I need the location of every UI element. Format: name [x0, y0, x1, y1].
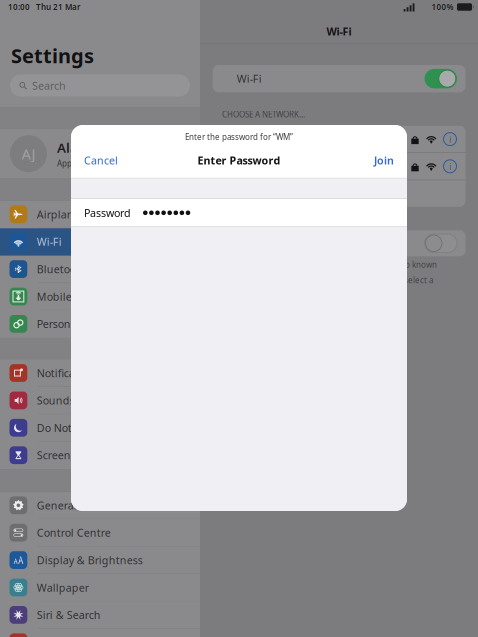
button[interactable]: Ask to Join Networks off — [424, 234, 457, 253]
button[interactable]: Touch ID & Passcode — [0, 629, 200, 637]
button[interactable]: Mbb — [213, 153, 465, 180]
button[interactable]: Airplane Mode — [0, 201, 200, 228]
staticText: i — [449, 133, 451, 145]
staticText: AJ — [21, 144, 35, 163]
button[interactable]: Do Not Disturb — [0, 414, 200, 442]
button[interactable]: Wi-Fi on — [424, 69, 457, 88]
button[interactable]: Control Centre — [0, 519, 200, 547]
button[interactable]: Screen Time — [0, 442, 200, 469]
staticText: Apple ID, iCloud, iTunes & App Store — [57, 158, 194, 169]
staticText: Wallpaper — [37, 580, 89, 595]
staticText: i — [449, 160, 451, 172]
staticText: General — [37, 498, 77, 512]
button[interactable]: Wi-Fi — [0, 228, 200, 256]
button[interactable]: Join — [374, 154, 394, 167]
staticText: Mbb — [237, 159, 261, 173]
button[interactable]: Bluetooth — [0, 256, 200, 283]
staticText: Siri & Search — [37, 608, 101, 622]
button[interactable]: Siri & Search — [0, 601, 200, 629]
staticText: Screen Time — [37, 448, 99, 462]
staticText: Alan Jones — [57, 139, 126, 156]
staticText: Enter the password for “WM” — [185, 131, 293, 142]
button[interactable]: Personal Hotspot — [0, 310, 200, 338]
staticText: Mobile Data — [37, 289, 99, 304]
staticText: Search — [32, 78, 66, 93]
staticText: Bluetooth — [37, 262, 87, 276]
button[interactable]: Display & Brightness — [0, 547, 200, 574]
button[interactable]: General — [0, 492, 200, 519]
staticText: Notifications — [37, 366, 100, 380]
staticText: Join — [374, 153, 394, 167]
button[interactable]: WM — [213, 126, 465, 152]
staticText: 100% — [431, 2, 453, 12]
staticText: Known networks will be joined automatica… — [222, 259, 437, 270]
staticText: Enter Password — [197, 153, 280, 167]
button[interactable]: Mobile Data — [0, 283, 200, 310]
staticText: networks are available, you will have to… — [222, 275, 433, 285]
staticText: 10:00 — [8, 2, 30, 12]
staticText: Wi-Fi — [37, 235, 62, 249]
staticText: Thu 21 Mar — [36, 2, 80, 12]
staticText: Settings — [11, 42, 94, 69]
button[interactable]: Wallpaper — [0, 574, 200, 601]
staticText: WM — [237, 132, 257, 146]
button[interactable]: Sounds — [0, 387, 200, 414]
button[interactable]: Other… — [213, 180, 465, 207]
staticText: Personal Hotspot — [37, 317, 123, 331]
staticText: Sounds — [37, 393, 75, 407]
staticText: CHOOSE A NETWORK... — [222, 109, 305, 120]
staticText: Display & Brightness — [37, 553, 143, 567]
button[interactable]: Notifications — [0, 360, 200, 387]
staticText: Other… — [237, 186, 273, 201]
staticText: Airplane Mode — [37, 207, 112, 221]
staticText: Control Centre — [37, 526, 111, 540]
button[interactable]: AJ — [0, 129, 200, 178]
staticText: Wi-Fi — [237, 72, 262, 86]
staticText: Do Not Disturb — [37, 421, 113, 435]
staticText: Cancel — [84, 153, 118, 167]
staticText: Wi-Fi — [326, 24, 351, 38]
button[interactable]: Cancel — [84, 154, 118, 167]
staticText: Password — [84, 206, 131, 220]
